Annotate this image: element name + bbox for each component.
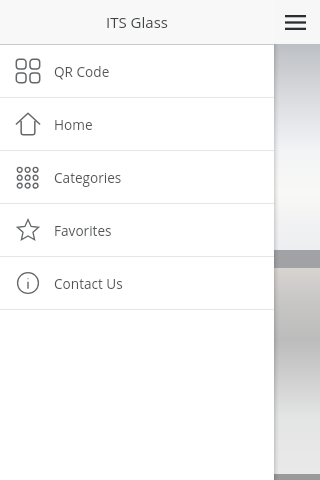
button[interactable]: Contact Us <box>0 257 274 309</box>
staticText: Categories <box>54 168 122 187</box>
staticText: ITS Glass <box>106 12 168 32</box>
staticText: Contact Us <box>54 274 123 293</box>
staticText: QR Code <box>54 62 110 81</box>
staticText: Home <box>54 115 93 134</box>
button[interactable]: Home <box>0 98 274 150</box>
button[interactable]: Categories <box>0 151 274 203</box>
staticText: Favorites <box>54 221 112 240</box>
button[interactable]: Open navigation menu <box>274 0 320 44</box>
button[interactable]: QR Code <box>0 45 274 97</box>
button[interactable]: Favorites <box>0 204 274 256</box>
